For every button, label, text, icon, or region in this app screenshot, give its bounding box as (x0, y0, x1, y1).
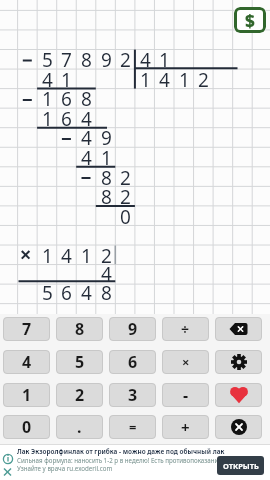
button[interactable]: 8 (56, 317, 103, 341)
button[interactable]: ОТКРЫТЬ (217, 456, 264, 475)
staticText: 8 (101, 165, 112, 189)
staticText: 2 (101, 243, 112, 267)
staticText: 1 (140, 67, 151, 91)
staticText: 8 (101, 184, 112, 208)
button[interactable]: 3 (109, 383, 156, 407)
staticText: 4 (22, 351, 32, 373)
staticText: 4 (42, 67, 53, 91)
staticText: 8 (101, 280, 112, 304)
button[interactable]: × (162, 350, 209, 374)
button[interactable] (215, 383, 262, 407)
staticText: 1 (42, 243, 53, 267)
button[interactable]: 6 (109, 350, 156, 374)
staticText: Сильная формула: наносить 1-2 р в неделю… (17, 456, 224, 464)
button[interactable]: ÷ (162, 317, 209, 341)
staticText: 6 (128, 351, 138, 373)
staticText: 0 (120, 204, 131, 228)
button[interactable] (215, 317, 262, 341)
staticText: 8 (81, 47, 92, 71)
staticText: 7 (61, 47, 72, 71)
staticText: 1 (101, 145, 112, 169)
button[interactable]: 0 (3, 415, 50, 439)
staticText: 2 (120, 184, 131, 208)
staticText: 1 (81, 243, 92, 267)
staticText: 4 (81, 125, 92, 149)
staticText: 1 (159, 47, 170, 71)
button[interactable]: 5 (56, 350, 103, 374)
staticText: 1 (42, 86, 53, 110)
staticText: + (181, 417, 190, 437)
button[interactable]: Лак Экзоролфинлак от грибка - можно даже… (0, 444, 270, 480)
staticText: 1 (61, 67, 72, 91)
staticText: 1 (22, 384, 32, 406)
staticText: 2 (120, 165, 131, 189)
staticText: 4 (81, 280, 92, 304)
button[interactable] (215, 350, 262, 374)
staticText: 8 (75, 318, 85, 340)
staticText: = (129, 418, 137, 436)
staticText: ОТКРЫТЬ (223, 461, 259, 471)
staticText: 6 (61, 106, 72, 130)
staticText: - (183, 384, 189, 406)
staticText: ÷ (181, 320, 190, 339)
button[interactable]: 2 (56, 383, 103, 407)
staticText: 9 (101, 47, 112, 71)
staticText: . (77, 416, 82, 438)
staticText: 6 (61, 280, 72, 304)
staticText: 4 (61, 243, 72, 267)
staticText: 4 (101, 261, 112, 285)
staticText: 3 (128, 384, 138, 406)
staticText: 4 (159, 67, 170, 91)
staticText: 5 (42, 280, 53, 304)
button[interactable]: + (162, 415, 209, 439)
staticText: 5 (75, 351, 85, 373)
button[interactable]: 7 (3, 317, 50, 341)
button[interactable] (215, 415, 262, 439)
staticText: 4 (81, 106, 92, 130)
staticText: 8 (81, 86, 92, 110)
button[interactable]: $ (234, 7, 266, 33)
staticText: 1 (42, 106, 53, 130)
staticText: $ (245, 9, 255, 32)
staticText: × (182, 353, 190, 371)
staticText: 2 (198, 67, 209, 91)
staticText: 2 (120, 47, 131, 71)
staticText: 1 (179, 67, 190, 91)
staticText: 4 (81, 145, 92, 169)
staticText: 5 (42, 47, 53, 71)
staticText: 2 (75, 384, 85, 406)
staticText: 7 (22, 318, 32, 340)
staticText: Лак Экзоролфинлак от грибка - можно даже… (17, 447, 225, 456)
button[interactable]: . (56, 415, 103, 439)
staticText: 0 (22, 416, 32, 438)
button[interactable]: - (162, 383, 209, 407)
staticText: Узнайте у врача ru.exoderil.com (17, 464, 113, 472)
staticText: 4 (140, 47, 151, 71)
button[interactable]: = (109, 415, 156, 439)
staticText: 9 (128, 318, 138, 340)
button[interactable]: 9 (109, 317, 156, 341)
button[interactable]: 1 (3, 383, 50, 407)
staticText: 9 (101, 125, 112, 149)
button[interactable]: 4 (3, 350, 50, 374)
staticText: 6 (61, 86, 72, 110)
